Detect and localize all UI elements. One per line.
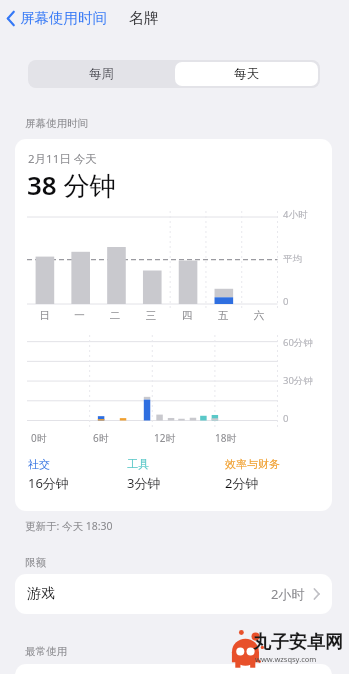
button[interactable]: 2月11日 今天 — [15, 139, 332, 511]
staticText: 日 — [27, 309, 62, 322]
staticText: 社交 — [28, 457, 50, 471]
staticText: 丸子安卓网 — [253, 631, 343, 654]
staticText: 6时 — [93, 431, 154, 445]
staticText: 三 — [133, 309, 169, 322]
button[interactable]: 社交 — [28, 457, 127, 492]
staticText: 16分钟 — [28, 474, 69, 492]
staticText: www.wzsqsy.com — [255, 654, 317, 664]
staticText: 名牌 — [129, 9, 159, 28]
staticText: 二 — [97, 309, 133, 322]
staticText: 每周 — [89, 66, 114, 82]
staticText: 五 — [205, 309, 241, 322]
staticText: 0 — [283, 412, 289, 425]
staticText: 工具 — [127, 457, 149, 471]
staticText: 最常使用 — [25, 645, 67, 658]
staticText: 18时 — [215, 431, 276, 445]
staticText: 六 — [241, 309, 277, 322]
staticText: 38 分钟 — [27, 167, 116, 203]
staticText: 0时 — [31, 431, 93, 445]
staticText: 一 — [62, 309, 97, 322]
staticText: 3分钟 — [127, 474, 161, 492]
staticText: 12时 — [154, 431, 215, 445]
button[interactable]: 工具 — [127, 457, 225, 492]
staticText: 效率与财务 — [225, 457, 280, 471]
staticText: 2月11日 今天 — [28, 151, 97, 167]
staticText: 每天 — [234, 66, 259, 82]
staticText: 限额 — [25, 556, 46, 569]
staticText: 平均 — [283, 253, 302, 265]
staticText: 4小时 — [283, 208, 308, 221]
staticText: 游戏 — [27, 585, 55, 603]
staticText: 60分钟 — [283, 336, 313, 349]
button[interactable]: 每天 — [175, 62, 318, 86]
staticText: 更新于: 今天 18:30 — [25, 519, 113, 533]
button[interactable]: 游戏 — [15, 574, 332, 614]
staticText: 2小时 — [271, 585, 305, 603]
button[interactable] — [174, 60, 320, 88]
staticText: 四 — [169, 309, 205, 322]
staticText: 0 — [283, 295, 289, 308]
button[interactable]: 每周 — [28, 60, 174, 88]
staticText: 2分钟 — [225, 474, 259, 492]
staticText: 30分钟 — [283, 374, 313, 387]
staticText: 屏幕使用时间 — [25, 117, 88, 130]
button[interactable]: 屏幕使用时间 — [0, 5, 115, 31]
button[interactable]: 效率与财务 — [225, 457, 323, 492]
staticText: 屏幕使用时间 — [20, 9, 107, 27]
